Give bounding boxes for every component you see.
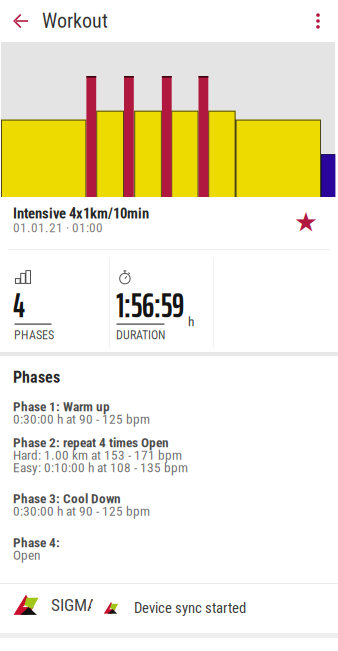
staticText: DURATION	[116, 328, 165, 342]
staticText: Phase 1: Warm up	[13, 399, 110, 415]
staticText: PHASES	[14, 328, 54, 342]
staticText: 0:30:00 h at 90 - 125 bpm	[13, 411, 150, 427]
staticText: h	[188, 314, 194, 329]
staticText: ★	[294, 206, 318, 237]
staticText: Hard: 1.00 km at 153 - 171 bpm	[13, 447, 182, 463]
staticText: 01.01.21 · 01:00	[13, 220, 103, 236]
staticText: 4	[13, 278, 25, 333]
staticText: Phase 3: Cool Down	[13, 491, 121, 507]
button[interactable]: More options	[298, 0, 338, 42]
staticText: Intensive 4x1km/10min	[13, 205, 149, 222]
staticText: 0:30:00 h at 90 - 125 bpm	[13, 503, 150, 519]
staticText: Easy: 0:10:00 h at 108 - 135 bpm	[13, 460, 188, 475]
staticText: Phase 2: repeat 4 times Open	[13, 435, 169, 451]
staticText: Device sync started	[134, 599, 246, 617]
staticText: Phase 4:	[13, 535, 60, 551]
staticText: Phases	[13, 368, 60, 387]
button[interactable]: Back	[0, 0, 42, 42]
staticText: SIGMA	[51, 595, 97, 615]
staticText: 1:56:59	[116, 278, 184, 333]
button[interactable]: Favorite	[292, 208, 320, 236]
staticText: Workout	[42, 9, 108, 33]
staticText: Open	[13, 547, 40, 563]
